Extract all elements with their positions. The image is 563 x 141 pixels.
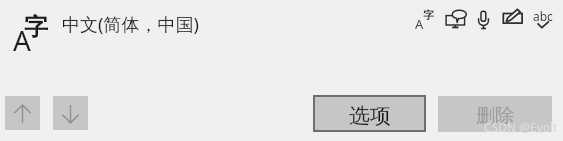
- button[interactable]: Language: [414, 8, 436, 32]
- button[interactable]: 删除: [438, 96, 552, 132]
- button[interactable]: 选项: [315, 97, 424, 130]
- staticText: CSDN @Evolt: [484, 119, 558, 135]
- staticText: 字: [24, 12, 48, 42]
- staticText: 选项: [349, 103, 391, 129]
- staticText: A: [13, 21, 31, 59]
- button[interactable]: Next page: [53, 96, 88, 130]
- staticText: 字: [423, 8, 434, 22]
- staticText: 中文(简体，中国): [62, 12, 199, 37]
- button[interactable]: Input language mode: [10, 6, 56, 52]
- button[interactable]: Handwriting input: [503, 9, 523, 24]
- staticText: 删除: [476, 104, 514, 128]
- button[interactable]: Spelling check: [532, 8, 554, 34]
- button[interactable]: Voice input: [478, 11, 489, 29]
- staticText: A: [415, 15, 424, 33]
- button[interactable]: Previous page: [5, 96, 40, 130]
- staticText: abc: [533, 8, 553, 24]
- button[interactable]: Input mode panel: [445, 9, 467, 29]
